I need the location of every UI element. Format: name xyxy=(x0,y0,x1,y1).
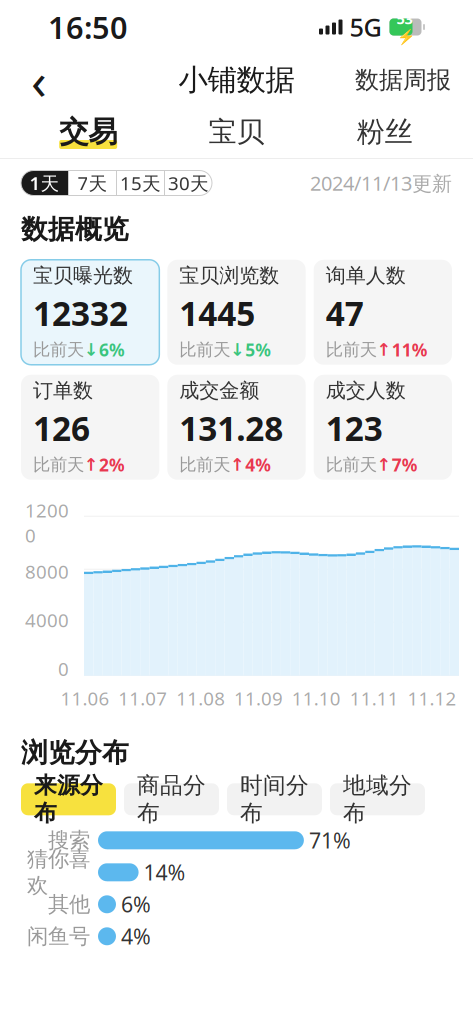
staticText: 宝贝 xyxy=(208,115,264,149)
staticText: 5G xyxy=(349,10,381,44)
staticText: 浏览分布 xyxy=(21,736,129,769)
staticText: 11.10 xyxy=(292,686,341,711)
staticText: 11.09 xyxy=(234,686,283,711)
button[interactable]: 宝贝曝光数 xyxy=(21,260,159,365)
staticText: 1445 xyxy=(179,291,255,335)
staticText: 4% xyxy=(121,922,151,950)
staticText: 小铺数据 xyxy=(178,62,294,98)
staticText: 询单人数 xyxy=(326,263,406,288)
staticText: 2% xyxy=(99,453,125,476)
staticText: 4% xyxy=(245,453,271,476)
staticText: 比前天 xyxy=(33,454,84,475)
staticText: 比前天 xyxy=(179,339,230,360)
staticText: 2024/11/13更新 xyxy=(310,170,452,196)
staticText: 11.08 xyxy=(176,686,225,711)
staticText: 4000 xyxy=(25,608,69,632)
staticText: 来源分布 xyxy=(34,771,103,827)
button[interactable]: 7天 xyxy=(69,170,116,195)
staticText: ↑ xyxy=(377,340,392,359)
button[interactable]: 宝贝浏览数 xyxy=(167,260,306,365)
staticText: 8000 xyxy=(25,559,69,584)
staticText: 16:50 xyxy=(48,7,128,47)
staticText: 7天 xyxy=(77,171,107,195)
staticText: 5% xyxy=(245,338,271,361)
staticText: 宝贝曝光数 xyxy=(33,263,133,288)
staticText: 1天 xyxy=(29,171,59,195)
staticText: 6% xyxy=(121,890,151,918)
staticText: 比前天 xyxy=(326,454,377,475)
staticText: 订单数 xyxy=(33,378,93,403)
button[interactable]: 30天 xyxy=(165,170,212,195)
staticText: 比前天 xyxy=(179,454,230,475)
staticText: ↓ xyxy=(84,340,99,359)
staticText: 交易 xyxy=(59,114,117,150)
staticText: ↑ xyxy=(230,455,245,474)
staticText: 其他 xyxy=(48,891,90,917)
staticText: 粉丝 xyxy=(357,115,413,149)
button[interactable]: 来源分布 xyxy=(21,783,116,815)
staticText: 数据概览 xyxy=(21,213,129,246)
staticText: 宝贝浏览数 xyxy=(179,263,279,288)
button[interactable]: 时间分布 xyxy=(227,783,322,815)
button[interactable]: 成交金额 xyxy=(167,375,306,480)
staticText: 11.07 xyxy=(118,686,167,711)
staticText: 搜索 xyxy=(48,827,90,853)
button[interactable]: 地域分布 xyxy=(330,783,425,815)
staticText: ↑ xyxy=(84,455,99,474)
staticText: 131.28 xyxy=(179,406,283,450)
staticText: 71% xyxy=(309,826,351,854)
staticText: 11.12 xyxy=(408,686,457,711)
staticText: 闲鱼号 xyxy=(27,923,90,949)
staticText: 成交金额 xyxy=(179,378,259,403)
staticText: 7% xyxy=(392,453,418,476)
staticText: ‹ xyxy=(31,46,47,114)
button[interactable]: 成交人数 xyxy=(314,375,452,480)
button[interactable]: 宝贝 xyxy=(162,109,311,155)
staticText: 14% xyxy=(144,858,186,886)
staticText: 30天 xyxy=(168,171,209,195)
staticText: 11.11 xyxy=(350,686,399,711)
button[interactable]: 数据周报 xyxy=(349,57,457,103)
staticText: ↓ xyxy=(230,340,245,359)
staticText: 时间分布 xyxy=(240,771,309,827)
staticText: 商品分布 xyxy=(137,771,206,827)
staticText: 比前天 xyxy=(33,339,84,360)
button[interactable]: 粉丝 xyxy=(311,109,459,155)
staticText: 15天 xyxy=(120,171,161,195)
staticText: 地域分布 xyxy=(343,771,412,827)
staticText: 11% xyxy=(392,338,428,361)
staticText: 数据周报 xyxy=(355,65,451,95)
button[interactable]: 询单人数 xyxy=(314,260,452,365)
staticText: 126 xyxy=(33,406,90,450)
staticText: ↑ xyxy=(377,455,392,474)
button[interactable]: 订单数 xyxy=(21,375,159,480)
staticText: 6% xyxy=(99,338,125,361)
staticText: 12000 xyxy=(25,498,69,548)
staticText: 47 xyxy=(326,291,364,335)
button[interactable]: 返回 xyxy=(16,57,62,103)
staticText: 猜你喜欢 xyxy=(27,846,90,898)
button[interactable]: 商品分布 xyxy=(124,783,219,815)
staticText: 0 xyxy=(58,656,69,681)
button[interactable]: 1天 xyxy=(21,170,68,195)
staticText: 12332 xyxy=(33,291,128,335)
button[interactable]: 15天 xyxy=(117,170,164,195)
staticText: 53⚡ xyxy=(396,9,414,45)
staticText: 成交人数 xyxy=(326,378,406,403)
staticText: 123 xyxy=(326,406,383,450)
staticText: 11.06 xyxy=(60,686,109,711)
button[interactable]: 交易 xyxy=(14,109,162,155)
staticText: 比前天 xyxy=(326,339,377,360)
